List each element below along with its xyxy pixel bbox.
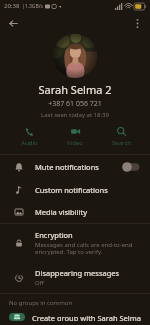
staticText: Messages and calls are end-to-end encryp… — [35, 241, 133, 256]
staticText: Video — [67, 139, 83, 147]
button[interactable]: Mute notifications — [0, 155, 150, 179]
staticText: Mute notifications — [35, 162, 99, 172]
staticText: Custom notifications — [35, 185, 108, 195]
staticText: No groups in common — [9, 299, 73, 307]
staticText: Audio — [21, 139, 38, 147]
button[interactable]: More options — [127, 13, 147, 33]
button[interactable]: Media visibility — [0, 201, 150, 223]
staticText: Create group with Sarah Selma — [32, 313, 141, 321]
staticText: Search — [112, 139, 131, 147]
staticText: Sarah Selma 2 — [38, 82, 112, 97]
button[interactable]: Custom notifications — [0, 179, 150, 201]
staticText: +387 61 056 721 — [48, 99, 102, 109]
button[interactable]: Encryption — [0, 224, 150, 262]
button[interactable]: Mute notifications toggle — [121, 161, 141, 173]
button[interactable]: Audio — [12, 124, 46, 149]
button[interactable]: Contact photo — [53, 34, 97, 78]
button[interactable]: Back — [3, 13, 23, 33]
button[interactable]: Video — [58, 124, 92, 149]
staticText: Last seen today at 18:39 — [41, 111, 109, 119]
staticText: Media visibility — [35, 207, 87, 217]
staticText: Disappearing messages — [35, 268, 120, 278]
staticText: Off — [35, 279, 44, 287]
button[interactable]: Search — [104, 124, 138, 149]
staticText: Encryption — [35, 230, 73, 240]
staticText: 20:38 — [4, 2, 20, 10]
staticText: |1.3GB/s — [22, 3, 43, 10]
button[interactable]: Create group with Sarah Selma — [0, 309, 150, 325]
button[interactable]: Disappearing messages — [0, 262, 150, 293]
